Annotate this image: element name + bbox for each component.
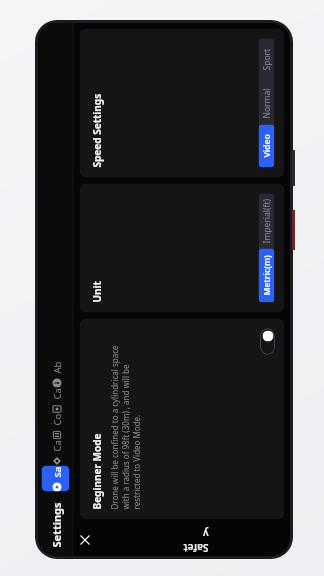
button[interactable]: Calibration (41, 439, 69, 465)
staticText: Speed Settings (89, 93, 103, 167)
staticText: Video (260, 133, 272, 157)
staticText: About (50, 361, 63, 373)
staticText: Calibration (50, 439, 63, 451)
button[interactable]: Video (258, 124, 274, 167)
button[interactable]: Close (73, 529, 95, 551)
button[interactable]: Safety (41, 465, 69, 491)
button[interactable]: Sport (258, 38, 274, 81)
staticText: Sport (260, 48, 272, 70)
staticText: Safety (50, 465, 63, 477)
button[interactable]: Normal (258, 81, 274, 124)
button[interactable]: Imperial(ft) (258, 193, 274, 248)
staticText: Safety (178, 526, 208, 554)
staticText: Drone will be confined to a cylindrical … (108, 328, 141, 509)
staticText: Metric(m) (260, 254, 272, 295)
button[interactable]: Camera (41, 387, 69, 413)
button[interactable]: Beginner Mode toggle (260, 328, 274, 354)
staticText: Settings (48, 501, 63, 547)
staticText: Control (50, 413, 63, 425)
button[interactable]: Metric(m) (258, 248, 274, 302)
staticText: Beginner Mode (89, 433, 103, 509)
button[interactable]: Control (41, 413, 69, 439)
button[interactable]: About (41, 361, 69, 387)
staticText: Unit (89, 280, 103, 302)
staticText: Imperial(ft) (260, 198, 272, 243)
staticText: Normal (260, 87, 272, 118)
staticText: Camera (50, 387, 63, 399)
